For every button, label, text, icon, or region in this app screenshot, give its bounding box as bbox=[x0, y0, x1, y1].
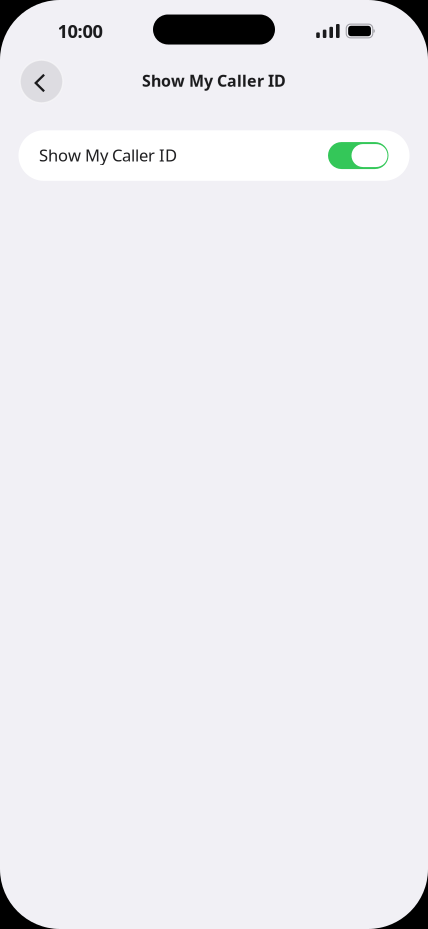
button[interactable]: Show My Caller ID bbox=[18, 130, 409, 181]
staticText: Show My Caller ID bbox=[39, 144, 177, 166]
staticText: Show My Caller ID bbox=[142, 70, 286, 91]
staticText: 10:00 bbox=[57, 19, 102, 43]
button[interactable]: Back bbox=[20, 61, 63, 104]
